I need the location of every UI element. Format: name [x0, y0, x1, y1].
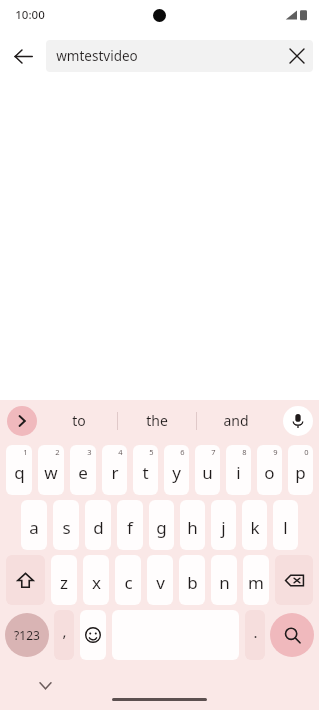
staticText: o — [264, 461, 275, 484]
staticText: k — [250, 516, 260, 539]
button[interactable]: u — [195, 445, 220, 495]
staticText: b — [187, 571, 198, 594]
staticText: 3 — [87, 447, 92, 457]
staticText: n — [219, 571, 230, 594]
button[interactable]: s — [53, 500, 79, 550]
button[interactable]: l — [273, 500, 298, 550]
staticText: y — [172, 461, 181, 484]
staticText: m — [248, 571, 264, 594]
staticText: . — [253, 622, 258, 642]
staticText: t — [142, 461, 149, 484]
button[interactable]: f — [117, 500, 143, 550]
staticText: f — [127, 516, 133, 539]
button[interactable]: Hide keyboard — [32, 672, 58, 698]
button[interactable]: ?123 — [5, 613, 49, 657]
staticText: , — [62, 621, 67, 641]
staticText: s — [62, 516, 71, 539]
button[interactable]: o — [257, 445, 282, 495]
staticText: l — [283, 516, 288, 539]
button[interactable]: the — [118, 400, 196, 441]
staticText: h — [187, 516, 198, 539]
button[interactable]: wmtestvideo — [46, 40, 313, 72]
button[interactable]: , — [54, 610, 74, 660]
button[interactable]: h — [180, 500, 205, 550]
staticText: g — [156, 516, 167, 539]
staticText: 4 — [118, 447, 123, 457]
button[interactable]: p — [288, 445, 313, 495]
button[interactable]: e — [70, 445, 96, 495]
staticText: wmtestvideo — [56, 47, 138, 65]
button[interactable]: b — [179, 555, 205, 605]
staticText: u — [202, 461, 213, 484]
staticText: 2 — [55, 447, 60, 457]
staticText: d — [93, 516, 104, 539]
staticText: a — [29, 516, 39, 539]
button[interactable]: z — [51, 555, 77, 605]
button[interactable]: . — [245, 610, 265, 660]
button[interactable]: m — [243, 555, 269, 605]
staticText: ?123 — [14, 627, 40, 643]
staticText: and — [223, 411, 249, 430]
staticText: w — [44, 461, 58, 484]
staticText: z — [60, 571, 68, 594]
button[interactable]: Clear — [281, 40, 313, 72]
staticText: the — [146, 411, 168, 430]
button[interactable]: c — [115, 555, 141, 605]
staticText: i — [236, 461, 241, 484]
button[interactable]: Backspace — [275, 555, 313, 605]
button[interactable]: Emoji — [80, 610, 106, 660]
button[interactable]: d — [85, 500, 111, 550]
button[interactable]: r — [102, 445, 127, 495]
button[interactable]: k — [242, 500, 267, 550]
button[interactable]: i — [226, 445, 251, 495]
staticText: 8 — [242, 447, 247, 457]
button[interactable]: j — [211, 500, 236, 550]
staticText: q — [14, 461, 25, 484]
button[interactable]: g — [149, 500, 174, 550]
button[interactable]: t — [133, 445, 158, 495]
staticText: v — [156, 571, 165, 594]
staticText: 9 — [273, 447, 278, 457]
button[interactable]: Shift — [6, 555, 45, 605]
button[interactable]: q — [6, 445, 32, 495]
button[interactable]: Search — [270, 613, 314, 657]
staticText: j — [221, 516, 226, 539]
staticText: c — [124, 571, 133, 594]
staticText: e — [78, 461, 88, 484]
button[interactable]: n — [211, 555, 237, 605]
staticText: 5 — [149, 447, 154, 457]
button[interactable]: to — [40, 400, 117, 441]
button[interactable]: Back — [0, 33, 46, 79]
button[interactable]: x — [83, 555, 109, 605]
button[interactable]: v — [147, 555, 173, 605]
staticText: 7 — [211, 447, 216, 457]
staticText: 10:00 — [15, 7, 45, 23]
staticText: r — [111, 461, 119, 484]
button[interactable]: Voice input — [283, 406, 313, 436]
button[interactable]: y — [164, 445, 189, 495]
staticText: x — [92, 571, 101, 594]
staticText: p — [295, 461, 306, 484]
button[interactable]: w — [38, 445, 64, 495]
staticText: 1 — [23, 447, 28, 457]
staticText: 0 — [304, 447, 309, 457]
staticText: to — [72, 411, 86, 430]
staticText: 6 — [180, 447, 185, 457]
button[interactable]: More suggestions — [7, 406, 37, 436]
button[interactable]: and — [197, 400, 275, 441]
button[interactable]: a — [21, 500, 47, 550]
